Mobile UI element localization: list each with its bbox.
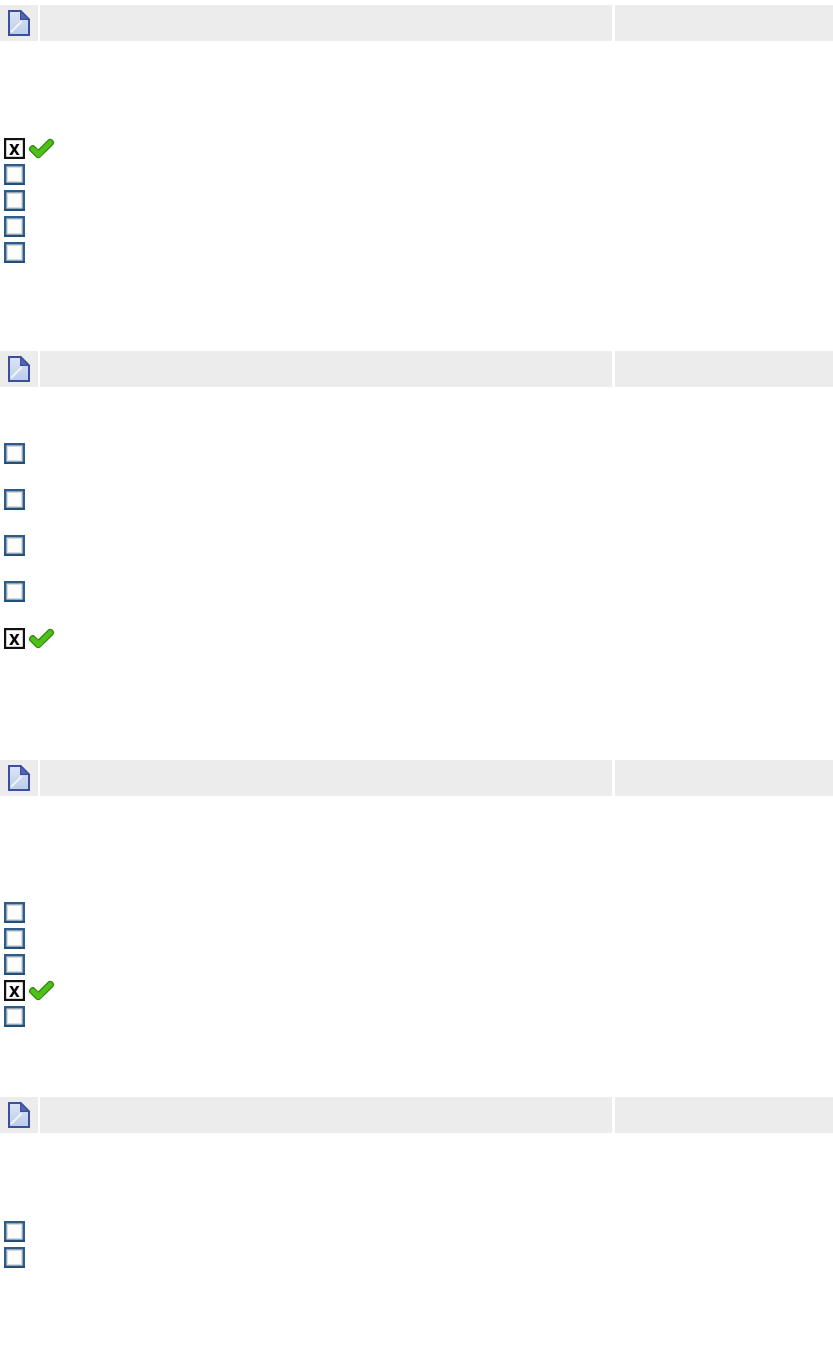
button[interactable]: Document [0,5,833,41]
button[interactable]: Unchecked option [4,954,25,975]
other: Document [8,765,30,791]
button[interactable]: Selected option [4,138,51,159]
staticText: X [9,629,20,649]
button[interactable]: Unchecked option [4,216,25,237]
button[interactable]: Document [0,351,833,387]
other: Document [8,10,30,36]
button[interactable]: Unchecked option [4,1247,25,1268]
other: Document [8,1102,30,1128]
button[interactable]: Unchecked option [4,928,25,949]
button[interactable]: Document [0,1097,833,1133]
staticText: X [9,981,20,1001]
button[interactable]: Document [0,760,833,796]
staticText: X [9,139,20,159]
button[interactable]: Unchecked option [4,1221,25,1242]
button[interactable]: Unchecked option [4,535,25,556]
button[interactable]: Unchecked option [4,581,25,602]
button[interactable]: Unchecked option [4,443,25,464]
button[interactable]: Unchecked option [4,164,25,185]
other: Document [8,356,30,382]
button[interactable]: Selected option [4,980,51,1001]
button[interactable]: Unchecked option [4,489,25,510]
button[interactable]: Unchecked option [4,902,25,923]
button[interactable]: Unchecked option [4,1006,25,1027]
button[interactable]: Selected option [4,628,51,649]
button[interactable]: Unchecked option [4,242,25,263]
button[interactable]: Unchecked option [4,190,25,211]
